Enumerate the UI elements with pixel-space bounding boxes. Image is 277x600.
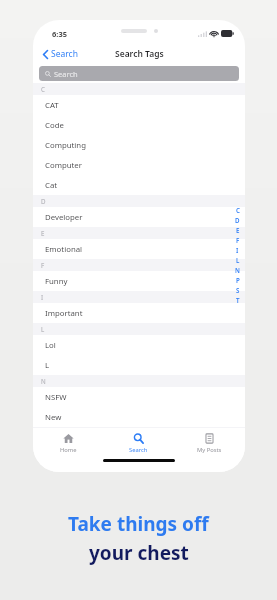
- button[interactable]: Lol: [33, 335, 245, 355]
- staticText: NSFW: [45, 392, 67, 403]
- staticText: L: [236, 256, 240, 264]
- button[interactable]: Search: [103, 428, 174, 458]
- button[interactable]: Search: [40, 46, 81, 62]
- button[interactable]: Home: [33, 428, 103, 458]
- staticText: Important: [45, 308, 83, 319]
- staticText: My Posts: [197, 446, 222, 454]
- staticText: C: [236, 206, 240, 214]
- staticText: Search Tags: [115, 48, 164, 60]
- button[interactable]: L: [33, 355, 245, 375]
- button[interactable]: Computer: [33, 155, 245, 175]
- button[interactable]: CAT: [33, 95, 245, 115]
- staticText: Lol: [45, 340, 56, 351]
- staticText: Developer: [45, 212, 83, 223]
- staticText: CAT: [45, 100, 59, 111]
- staticText: I: [41, 293, 44, 301]
- staticText: L: [45, 360, 50, 371]
- staticText: P: [236, 276, 240, 284]
- button[interactable]: Important: [33, 303, 245, 323]
- staticText: New: [45, 412, 62, 423]
- staticText: N: [41, 377, 46, 385]
- staticText: Take things off: [68, 511, 209, 537]
- button[interactable]: Funny: [33, 271, 245, 291]
- staticText: Computing: [45, 140, 86, 151]
- staticText: Computer: [45, 160, 82, 171]
- button[interactable]: Emotional: [33, 239, 245, 259]
- button[interactable]: Developer: [33, 207, 245, 227]
- button[interactable]: Cat: [33, 175, 245, 195]
- button[interactable]: Computing: [33, 135, 245, 155]
- staticText: C: [41, 85, 45, 93]
- button[interactable]: Code: [33, 115, 245, 135]
- staticText: your chest: [89, 540, 189, 566]
- staticText: E: [236, 226, 240, 234]
- staticText: S: [236, 286, 240, 294]
- staticText: Funny: [45, 276, 68, 287]
- staticText: Code: [45, 120, 64, 131]
- staticText: 6:35: [52, 29, 67, 39]
- staticText: Home: [60, 446, 77, 454]
- staticText: D: [41, 197, 46, 205]
- staticText: Search: [54, 69, 78, 79]
- button[interactable]: NSFW: [33, 387, 245, 407]
- staticText: Search: [129, 446, 148, 454]
- staticText: L: [41, 325, 45, 333]
- staticText: I: [236, 246, 239, 254]
- staticText: Cat: [45, 180, 58, 191]
- staticText: F: [41, 261, 45, 269]
- staticText: N: [235, 266, 240, 274]
- staticText: E: [41, 229, 45, 237]
- staticText: D: [235, 216, 240, 224]
- button[interactable]: My Posts: [174, 428, 245, 458]
- staticText: Search: [51, 48, 78, 60]
- staticText: T: [236, 296, 240, 304]
- staticText: Emotional: [45, 244, 83, 255]
- button[interactable]: New: [33, 407, 245, 427]
- button[interactable]: Search: [39, 66, 239, 81]
- staticText: F: [236, 236, 240, 244]
